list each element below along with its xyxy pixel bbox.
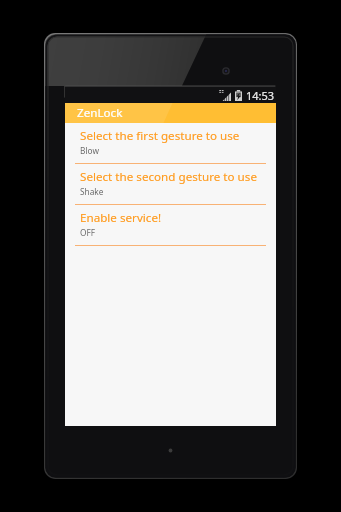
- other: Mobile signal: [219, 90, 231, 101]
- staticText: Select the first gesture to use: [80, 128, 240, 144]
- staticText: Shake: [80, 186, 104, 197]
- button[interactable]: Enable service!: [65, 205, 276, 246]
- other: Battery charging: [235, 90, 242, 101]
- staticText: Enable service!: [80, 210, 162, 226]
- staticText: OFF: [80, 227, 96, 238]
- staticText: Blow: [80, 145, 99, 156]
- button[interactable]: Select the first gesture to use: [65, 123, 276, 164]
- staticText: 14:53: [246, 88, 275, 103]
- staticText: Select the second gesture to use: [80, 169, 257, 185]
- staticText: ZenLock: [77, 105, 123, 121]
- button[interactable]: Select the second gesture to use: [65, 164, 276, 205]
